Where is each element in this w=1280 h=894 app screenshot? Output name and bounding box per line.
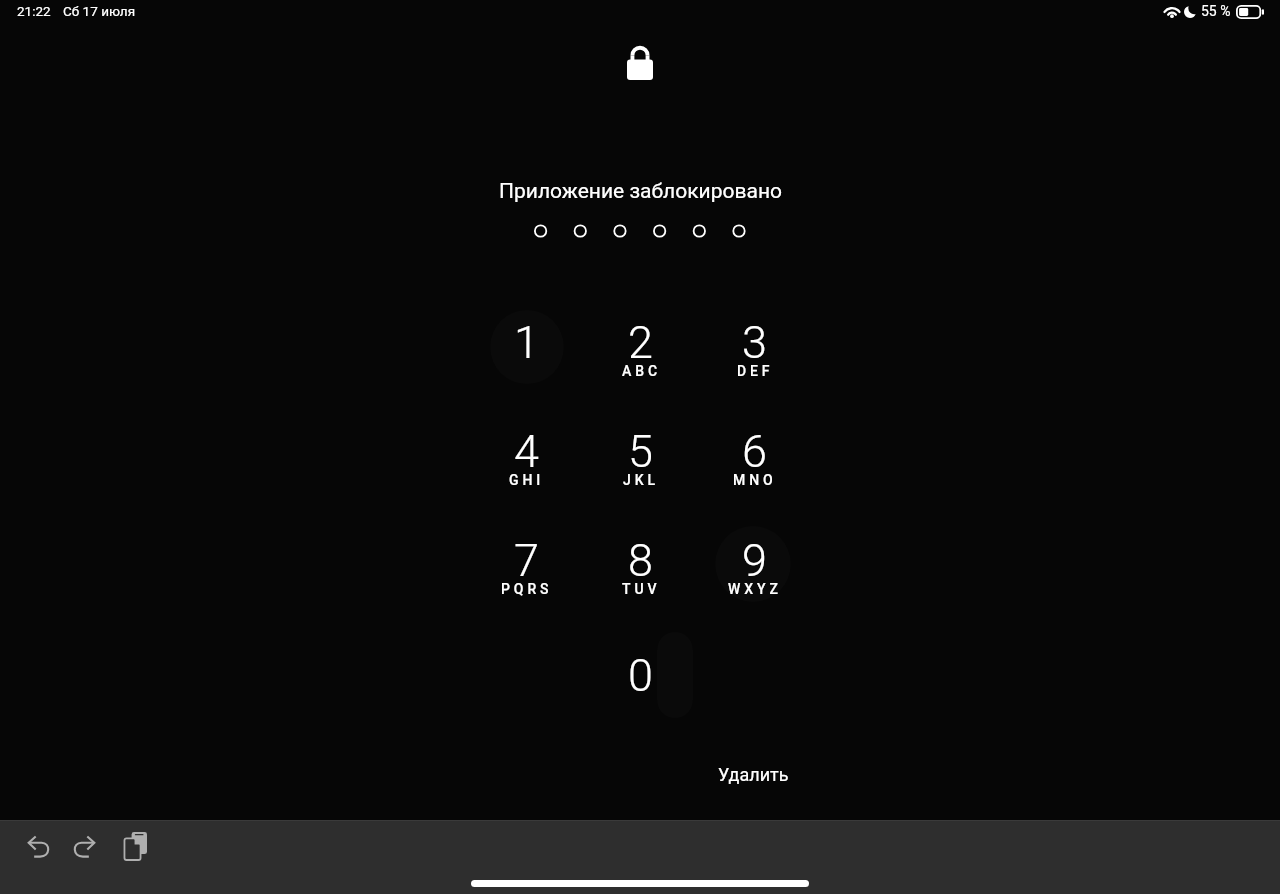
staticText: Сб 17 июля [63,3,136,19]
button[interactable]: 8 [583,519,697,628]
staticText: 2 [628,316,653,369]
staticText: TUV [622,581,661,597]
button[interactable]: Copy [111,822,159,870]
button[interactable]: Удалить [700,753,807,796]
staticText: JKL [623,472,659,488]
staticText: MNO [733,472,777,488]
button[interactable]: 7 [469,519,583,628]
staticText: PQRS [501,581,553,597]
staticText: DEF [737,363,774,379]
staticText: 8 [628,534,653,587]
staticText: GHI [509,472,545,488]
staticText: Приложение заблокировано [499,179,782,204]
button[interactable]: 0 [583,634,697,743]
staticText: 55 % [1201,3,1231,19]
button[interactable]: 4 [469,410,583,519]
staticText: 6 [742,425,767,478]
button[interactable]: 1 [469,301,583,410]
staticText: WXYZ [728,581,782,597]
staticText: 1 [514,316,539,369]
staticText: 21:22 [17,3,51,19]
staticText: ABC [622,363,661,379]
button[interactable]: 2 [583,301,697,410]
staticText: 4 [514,425,539,478]
staticText: 3 [742,316,767,369]
staticText: 5 [628,425,653,478]
staticText: 7 [514,534,539,587]
button[interactable]: Redo [60,822,108,870]
button[interactable]: 3 [697,301,811,410]
button[interactable]: 5 [583,410,697,519]
staticText: 0 [628,649,653,702]
button[interactable]: Undo [15,822,63,870]
staticText: 9 [742,534,767,587]
staticText: Удалить [718,764,789,785]
button[interactable]: 6 [697,410,811,519]
button[interactable]: 9 [697,519,811,628]
